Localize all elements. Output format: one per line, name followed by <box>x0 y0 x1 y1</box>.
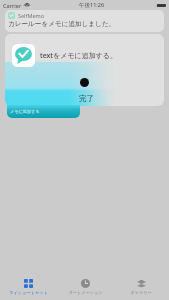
staticText: オートメーション <box>68 290 103 295</box>
button[interactable]: SelfMemo <box>5 10 164 32</box>
staticText: Carrier <box>3 2 22 9</box>
staticText: 完了 <box>79 94 94 103</box>
staticText: マイショートカット <box>9 290 48 295</box>
button[interactable]: 完了 <box>73 92 99 104</box>
staticText: 午後11:26 <box>79 1 105 9</box>
button[interactable]: マイショートカット <box>0 276 57 300</box>
staticText: メモに追加する <box>10 109 40 114</box>
staticText: textをメモに追加する。 <box>40 51 118 61</box>
button[interactable]: オートメーション <box>57 276 113 300</box>
staticText: カレールーをメモに追加しました。 <box>8 20 116 28</box>
staticText: SelfMemo <box>18 12 44 19</box>
button[interactable]: ギャラリー <box>113 276 169 300</box>
staticText: ギャラリー <box>130 290 152 295</box>
